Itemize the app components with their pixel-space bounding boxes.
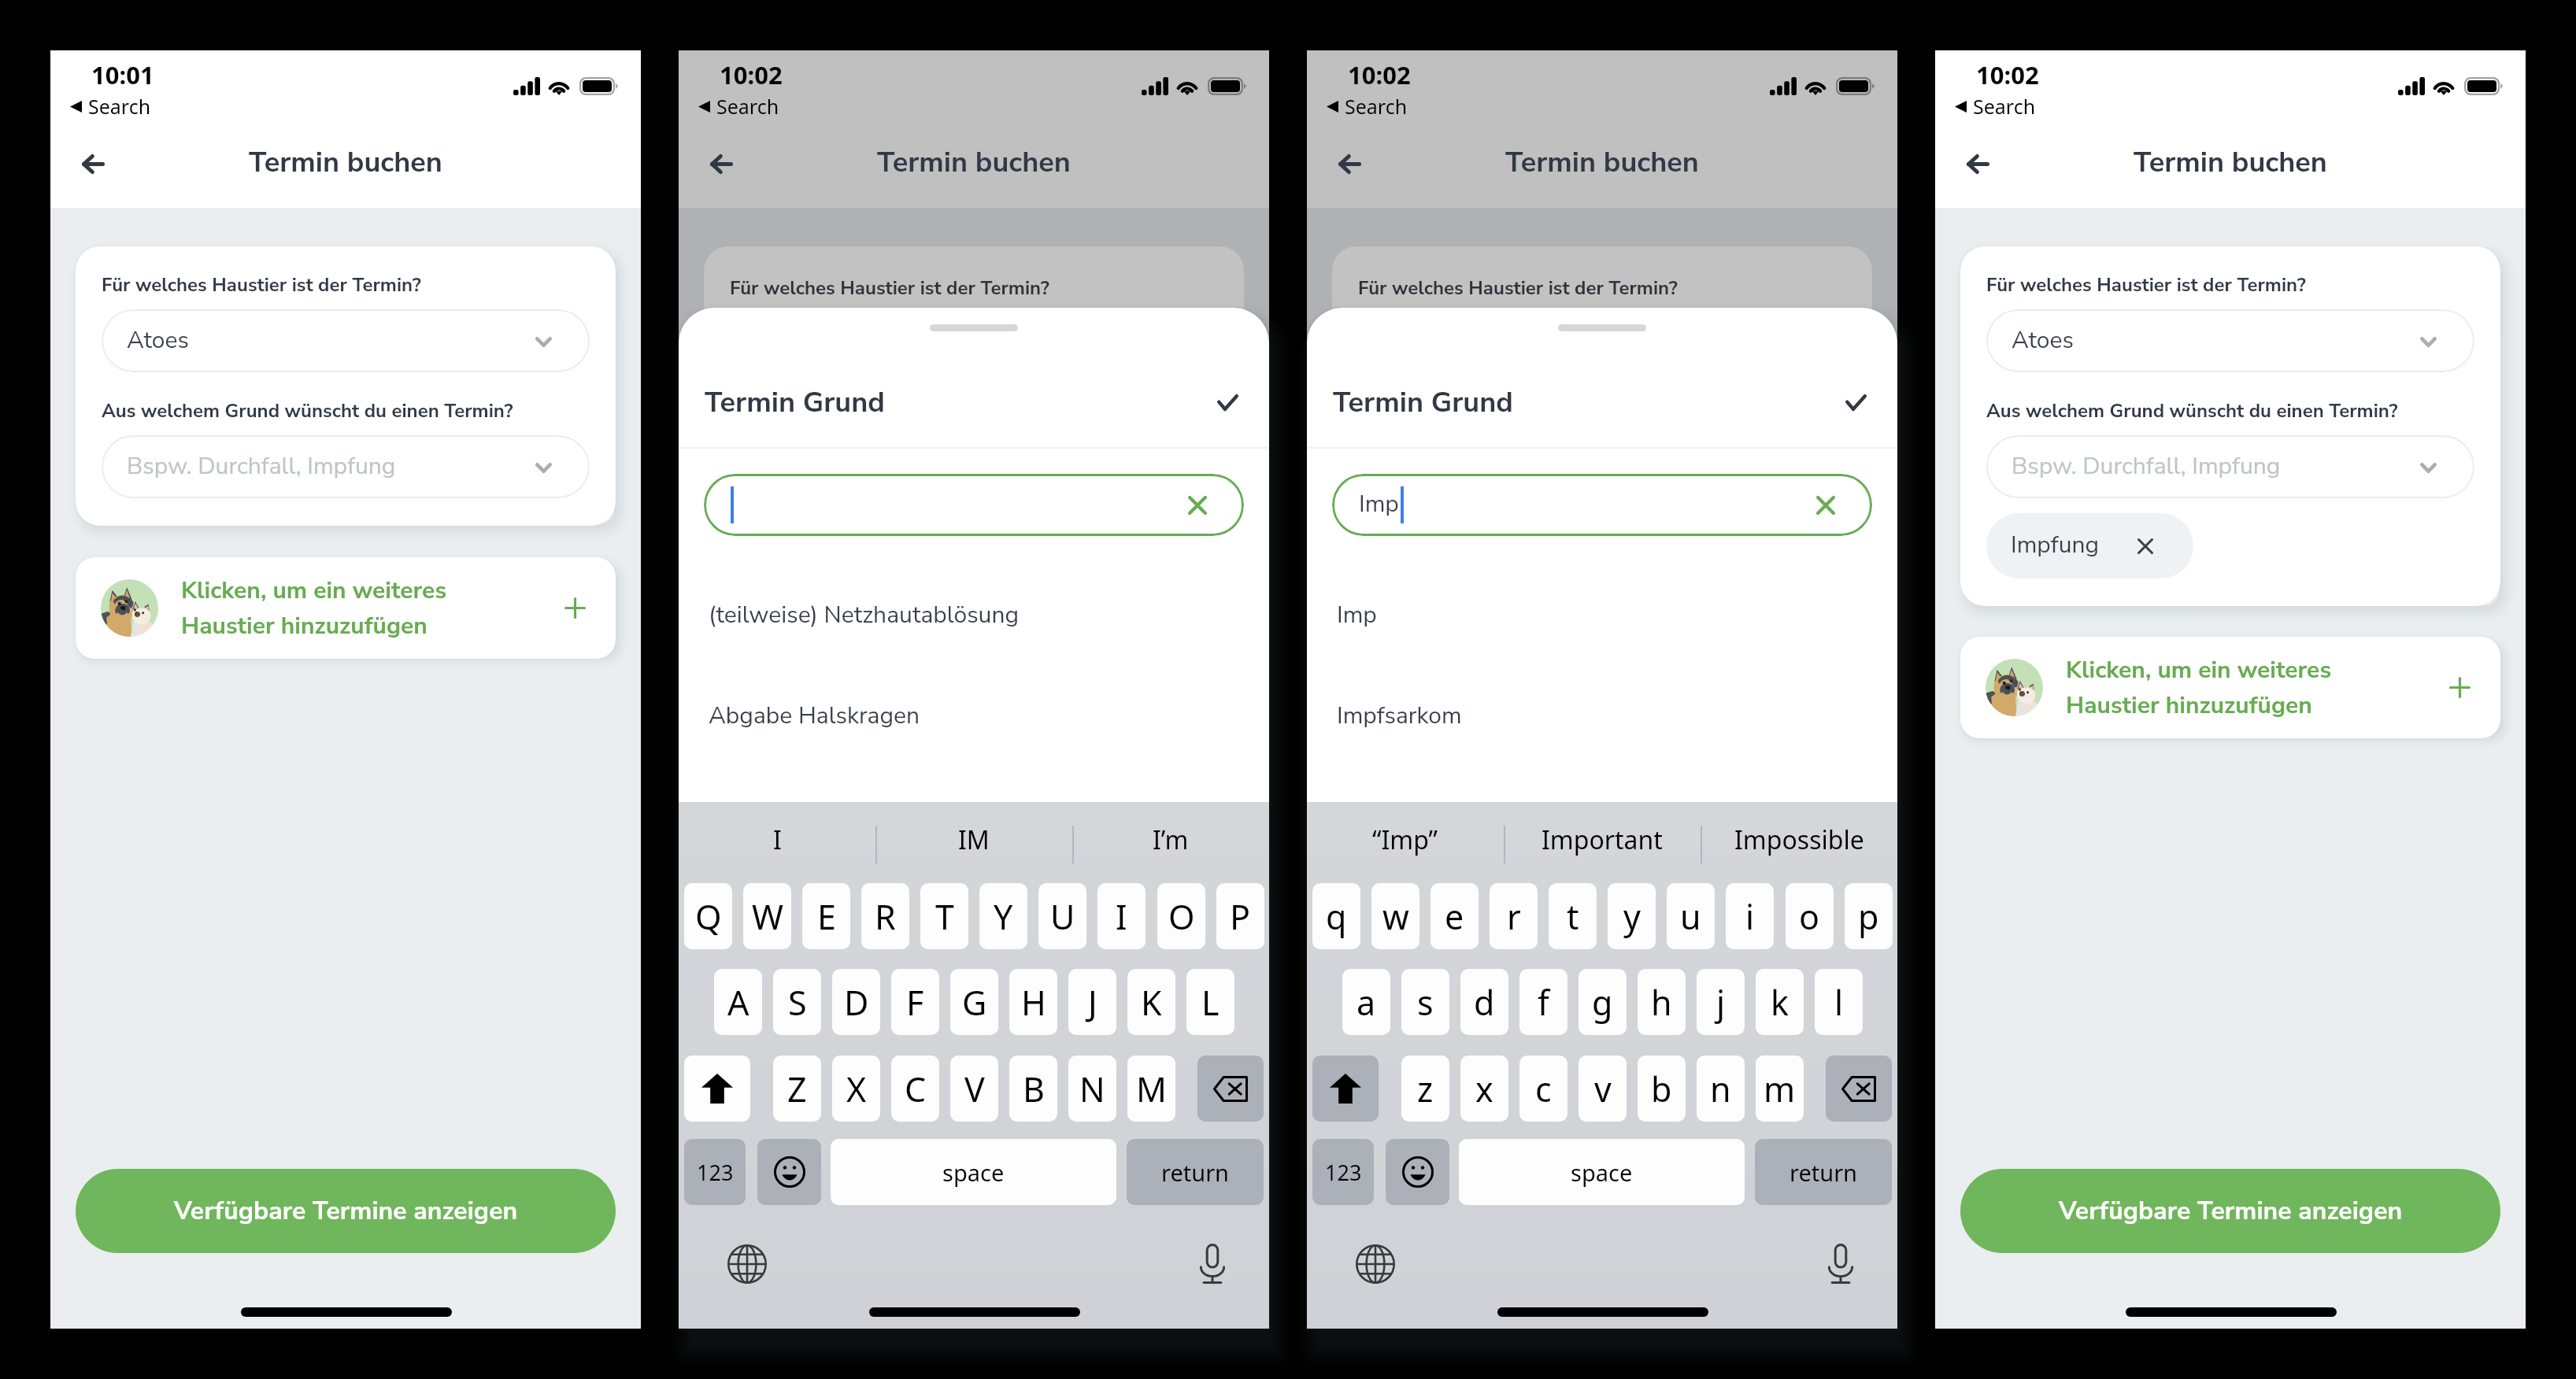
- button[interactable]: Impfsarkom: [1307, 681, 1897, 782]
- button[interactable]: s: [1401, 969, 1449, 1035]
- button[interactable]: M: [1127, 1056, 1175, 1122]
- button[interactable]: (teilweise) Netzhautablösung: [679, 580, 1269, 681]
- button[interactable]: Emoji: [757, 1139, 821, 1205]
- button[interactable]: x: [1460, 1056, 1508, 1122]
- button[interactable]: Verfügbare Termine anzeigen: [76, 1169, 616, 1253]
- button[interactable]: k: [1756, 969, 1804, 1035]
- button[interactable]: Abgabe Halskragen: [679, 681, 1269, 782]
- button[interactable]: Löschen: [1197, 1056, 1264, 1122]
- button[interactable]: Q: [684, 883, 732, 949]
- button[interactable]: Zurück: [1318, 140, 1381, 187]
- button[interactable]: return: [1127, 1139, 1264, 1205]
- button[interactable]: Löschen: [1826, 1056, 1892, 1122]
- button[interactable]: q: [1312, 883, 1360, 949]
- button[interactable]: return: [1755, 1139, 1892, 1205]
- button[interactable]: Sprache wechseln: [1352, 1240, 1399, 1288]
- button[interactable]: C: [891, 1056, 939, 1122]
- button[interactable]: T: [920, 883, 968, 949]
- button[interactable]: W: [743, 883, 791, 949]
- button[interactable]: Impfung: [1986, 513, 2193, 579]
- button[interactable]: o: [1786, 883, 1834, 949]
- button[interactable]: Y: [979, 883, 1027, 949]
- button[interactable]: 123: [684, 1139, 746, 1205]
- button[interactable]: h: [1638, 969, 1686, 1035]
- button[interactable]: J: [1068, 969, 1116, 1035]
- button[interactable]: Sprache wechseln: [724, 1240, 771, 1288]
- button[interactable]: B: [1009, 1056, 1057, 1122]
- button[interactable]: I: [679, 802, 875, 886]
- button[interactable]: space: [1459, 1139, 1745, 1205]
- staticText: C: [905, 1066, 927, 1112]
- button[interactable]: r: [1490, 883, 1538, 949]
- button[interactable]: Diktieren: [1817, 1240, 1864, 1288]
- button[interactable]: v: [1579, 1056, 1627, 1122]
- button[interactable]: f: [1519, 969, 1567, 1035]
- button[interactable]: N: [1068, 1056, 1116, 1122]
- button[interactable]: Imp: [1307, 580, 1897, 681]
- button[interactable]: Bspw. Durchfall, Impfung: [1986, 435, 2474, 498]
- button[interactable]: 123: [1312, 1139, 1374, 1205]
- button[interactable]: Shift: [1312, 1056, 1379, 1122]
- button[interactable]: l: [1815, 969, 1863, 1035]
- button[interactable]: y: [1608, 883, 1656, 949]
- button[interactable]: Zurück: [1946, 140, 2009, 187]
- button[interactable]: u: [1667, 883, 1715, 949]
- button[interactable]: z: [1401, 1056, 1449, 1122]
- button[interactable]: Zurück: [61, 140, 124, 187]
- button[interactable]: Shift: [684, 1056, 750, 1122]
- staticText: m: [1764, 1066, 1796, 1112]
- button[interactable]: A: [714, 969, 762, 1035]
- button[interactable]: b: [1638, 1056, 1686, 1122]
- button[interactable]: t: [1549, 883, 1597, 949]
- button[interactable]: p: [1845, 883, 1893, 949]
- button[interactable]: P: [1216, 883, 1264, 949]
- button[interactable]: Bestätigen: [1824, 374, 1887, 431]
- button[interactable]: j: [1697, 969, 1745, 1035]
- button[interactable]: R: [861, 883, 909, 949]
- button[interactable]: Emoji: [1386, 1139, 1449, 1205]
- button[interactable]: Atoes: [1986, 309, 2474, 372]
- button[interactable]: Bspw. Durchfall, Impfung: [102, 435, 590, 498]
- button[interactable]: n: [1697, 1056, 1745, 1122]
- button[interactable]: Diktieren: [1189, 1240, 1236, 1288]
- button[interactable]: Zurück: [690, 140, 753, 187]
- button[interactable]: V: [950, 1056, 998, 1122]
- button[interactable]: I: [1097, 883, 1146, 949]
- button[interactable]: E: [802, 883, 850, 949]
- button[interactable]: i: [1726, 883, 1774, 949]
- button[interactable]: Verfügbare Termine anzeigen: [1960, 1169, 2500, 1253]
- button[interactable]: space: [831, 1139, 1116, 1205]
- staticText: Bspw. Durchfall, Impfung: [2012, 450, 2281, 482]
- button[interactable]: c: [1519, 1056, 1567, 1122]
- button[interactable]: Impossible: [1701, 802, 1897, 886]
- button[interactable]: U: [1038, 883, 1086, 949]
- button[interactable]: a: [1342, 969, 1390, 1035]
- button[interactable]: K: [1127, 969, 1175, 1035]
- button[interactable]: Klicken, um ein weiteres Haustier hinzuz…: [76, 557, 616, 659]
- button[interactable]: “Imp”: [1307, 802, 1504, 886]
- button[interactable]: L: [1186, 969, 1234, 1035]
- button[interactable]: I’m: [1072, 802, 1269, 886]
- button[interactable]: O: [1157, 883, 1205, 949]
- button[interactable]: Imp: [1332, 474, 1872, 536]
- button[interactable]: F: [891, 969, 939, 1035]
- button[interactable]: d: [1460, 969, 1508, 1035]
- button[interactable]: Important: [1504, 802, 1701, 886]
- button[interactable]: m: [1756, 1056, 1804, 1122]
- button[interactable]: IM: [875, 802, 1072, 886]
- button[interactable]: H: [1009, 969, 1057, 1035]
- button[interactable]: D: [832, 969, 880, 1035]
- button[interactable]: [704, 474, 1244, 536]
- button[interactable]: X: [832, 1056, 880, 1122]
- button[interactable]: Atoes: [102, 309, 590, 372]
- button[interactable]: w: [1371, 883, 1419, 949]
- button[interactable]: S: [773, 969, 821, 1035]
- button[interactable]: Klicken, um ein weiteres Haustier hinzuz…: [1960, 637, 2500, 738]
- staticText: (teilweise) Netzhautablösung: [709, 599, 1020, 631]
- button[interactable]: e: [1430, 883, 1479, 949]
- button[interactable]: Bestätigen: [1196, 374, 1259, 431]
- button[interactable]: g: [1579, 969, 1627, 1035]
- button[interactable]: G: [950, 969, 998, 1035]
- button[interactable]: Z: [773, 1056, 821, 1122]
- staticText: O: [1168, 893, 1195, 940]
